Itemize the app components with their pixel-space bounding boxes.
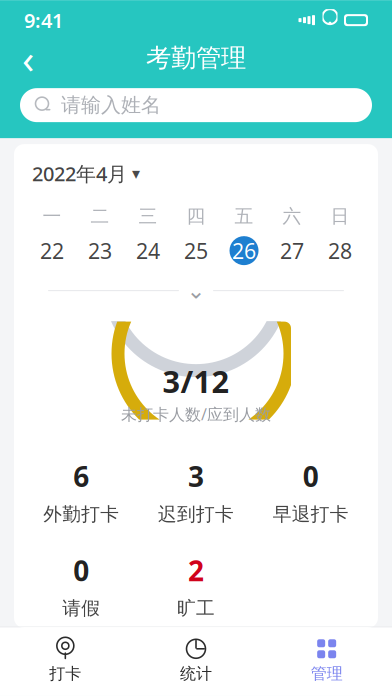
staticText: 25 [184, 236, 208, 265]
button[interactable]: 统计 [131, 631, 261, 689]
button[interactable]: 管理 [261, 631, 392, 689]
staticText: 外勤打卡 [43, 503, 119, 526]
button[interactable]: 25 [172, 234, 220, 268]
staticText: 五 [234, 205, 253, 228]
staticText: 管理 [311, 664, 343, 683]
button[interactable]: 22 [28, 234, 76, 268]
button[interactable]: 打卡 [0, 631, 131, 689]
button[interactable]: 0 [253, 458, 368, 526]
staticText: 请输入姓名 [61, 93, 161, 117]
staticText: 2 [188, 552, 204, 589]
staticText: 0 [73, 552, 89, 589]
button[interactable]: Back [6, 40, 50, 76]
staticText: 27 [280, 236, 304, 265]
staticText: ⌄ [186, 278, 205, 303]
button[interactable]: Expand calendar [179, 282, 213, 300]
staticText: 23 [88, 236, 112, 265]
staticText: 22 [40, 236, 64, 265]
staticText: 3/12 [162, 361, 229, 401]
staticText: 六 [282, 205, 301, 228]
staticText: 28 [328, 236, 352, 265]
button[interactable]: 28 [316, 234, 364, 268]
staticText: 26 [232, 236, 256, 265]
button[interactable]: 2 [139, 552, 253, 620]
staticText: 旷工 [177, 597, 215, 620]
staticText: 早退打卡 [273, 503, 349, 526]
button[interactable]: 2022年4月 [32, 160, 360, 187]
button[interactable]: 0 [24, 552, 139, 620]
button[interactable]: 27 [268, 234, 316, 268]
staticText: 打卡 [49, 664, 81, 683]
staticText: 三 [138, 205, 157, 228]
staticText: 3 [188, 458, 204, 495]
staticText: 统计 [180, 664, 212, 683]
staticText: 未打卡人数/应到人数 [121, 403, 271, 425]
staticText: 二 [90, 205, 109, 228]
button[interactable]: 24 [124, 234, 172, 268]
staticText: 日 [330, 205, 349, 228]
button[interactable]: 23 [76, 234, 124, 268]
staticText: ▾ [132, 164, 140, 182]
staticText: 四 [186, 205, 205, 228]
staticText: 请假 [62, 597, 100, 620]
staticText: 迟到打卡 [158, 503, 234, 526]
button[interactable]: 6 [24, 458, 139, 526]
button[interactable]: 26 [220, 234, 268, 268]
staticText: 2022年4月 [32, 160, 127, 187]
staticText: 6 [73, 458, 89, 495]
button[interactable]: 3 [139, 458, 253, 526]
staticText: 9:41 [24, 7, 63, 33]
staticText: 0 [303, 458, 319, 495]
staticText: 考勤管理 [146, 43, 246, 74]
staticText: ‹ [22, 32, 34, 85]
staticText: 一 [42, 205, 61, 228]
staticText: 24 [136, 236, 160, 265]
button[interactable]: 请输入姓名 [20, 88, 372, 122]
